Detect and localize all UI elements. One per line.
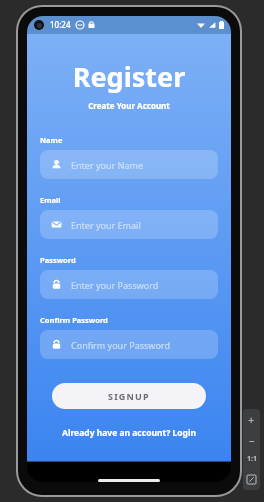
staticText: Name [40,135,63,145]
staticText: Password [40,255,76,265]
staticText: + [248,412,255,427]
button[interactable]: Zoom to fit [243,469,260,490]
staticText: 1:1 [247,454,257,464]
staticText: Register [27,58,231,95]
staticText: Confirm Password [40,315,108,325]
button[interactable]: Enter your Password [40,270,218,299]
button[interactable]: Zoom out [243,429,260,449]
button[interactable]: Zoom in [243,409,260,429]
staticText: – [249,432,255,447]
staticText: Email [40,195,61,205]
staticText: Confirm your Password [71,339,170,351]
staticText: Enter your Password [71,279,159,291]
staticText: Create Your Account [27,100,231,111]
staticText: Already have an account? Login [62,427,196,439]
button[interactable]: Enter your Name [40,150,218,179]
button[interactable]: SIGNUP [52,383,206,409]
button[interactable]: Actual size [243,449,260,469]
staticText: Enter your Name [71,159,143,171]
button[interactable]: Enter your Email [40,210,218,239]
staticText: 10:24 [50,19,71,30]
button[interactable]: Already have an account? Login [27,427,231,439]
staticText: SIGNUP [108,390,150,402]
staticText: Enter your Email [71,219,141,231]
button[interactable]: Confirm your Password [40,330,218,359]
